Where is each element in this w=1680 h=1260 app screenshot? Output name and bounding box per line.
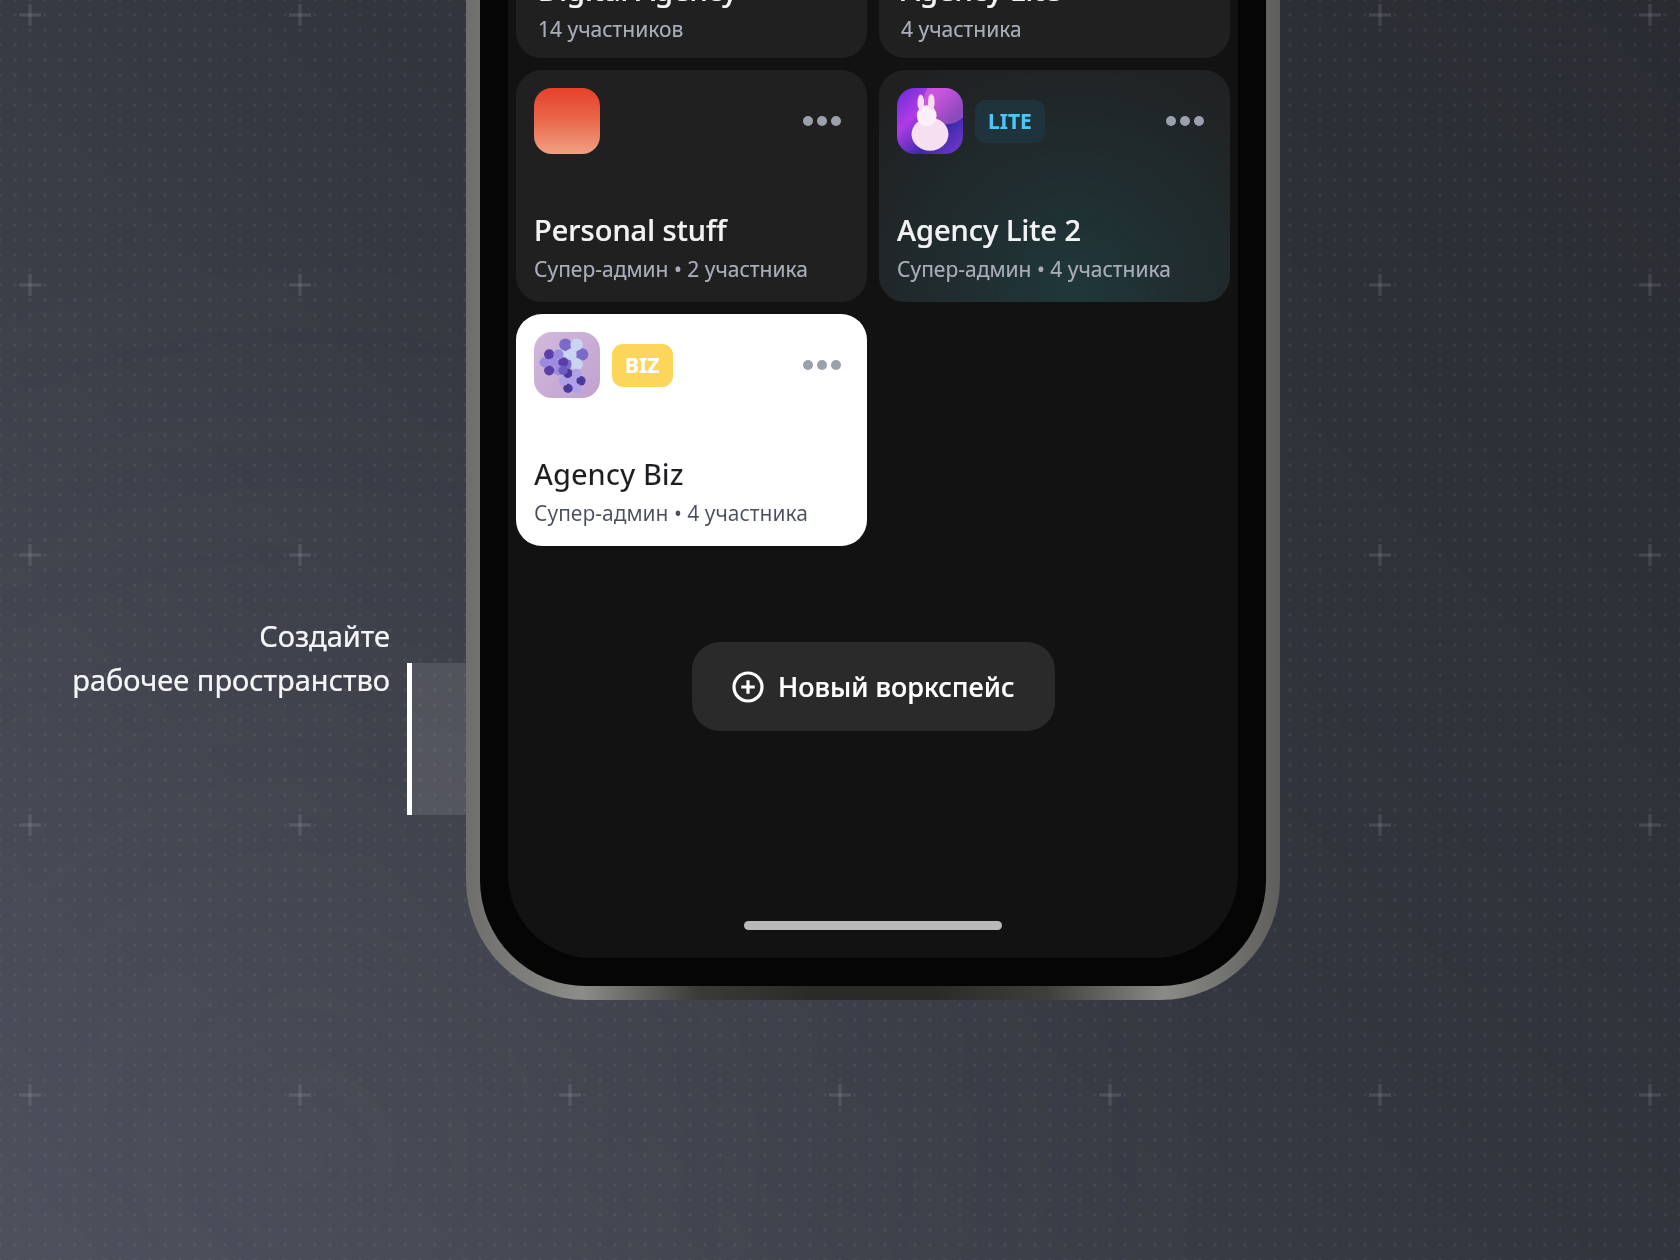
- button[interactable]: Agency Lite: [879, 0, 1230, 58]
- staticText: Супер-админ • 4 участника: [897, 255, 1171, 284]
- button[interactable]: Новый воркспейс: [692, 642, 1055, 731]
- staticText: Супер-админ • 4 участника: [534, 499, 808, 528]
- staticText: Создайте: [259, 616, 390, 655]
- staticText: Agency Biz: [534, 454, 684, 493]
- button[interactable]: More options: [795, 108, 849, 134]
- staticText: Новый воркспейс: [778, 668, 1015, 705]
- staticText: LITE: [988, 107, 1032, 136]
- staticText: Personal stuff: [534, 210, 727, 249]
- staticText: Digital Agency: [538, 0, 738, 9]
- button[interactable]: BIZ: [516, 314, 867, 546]
- staticText: Agency Lite: [901, 0, 1061, 9]
- button[interactable]: LITE: [879, 70, 1230, 302]
- button[interactable]: Digital Agency: [516, 0, 867, 58]
- staticText: рабочее пространство: [72, 660, 390, 699]
- staticText: Agency Lite 2: [897, 210, 1082, 249]
- staticText: 4 участника: [901, 15, 1022, 44]
- staticText: 14 участников: [538, 15, 684, 44]
- staticText: BIZ: [625, 351, 660, 380]
- button[interactable]: More options: [1158, 108, 1212, 134]
- staticText: Супер-админ • 2 участника: [534, 255, 808, 284]
- button[interactable]: More options: [795, 352, 849, 378]
- button[interactable]: More options: [516, 70, 867, 302]
